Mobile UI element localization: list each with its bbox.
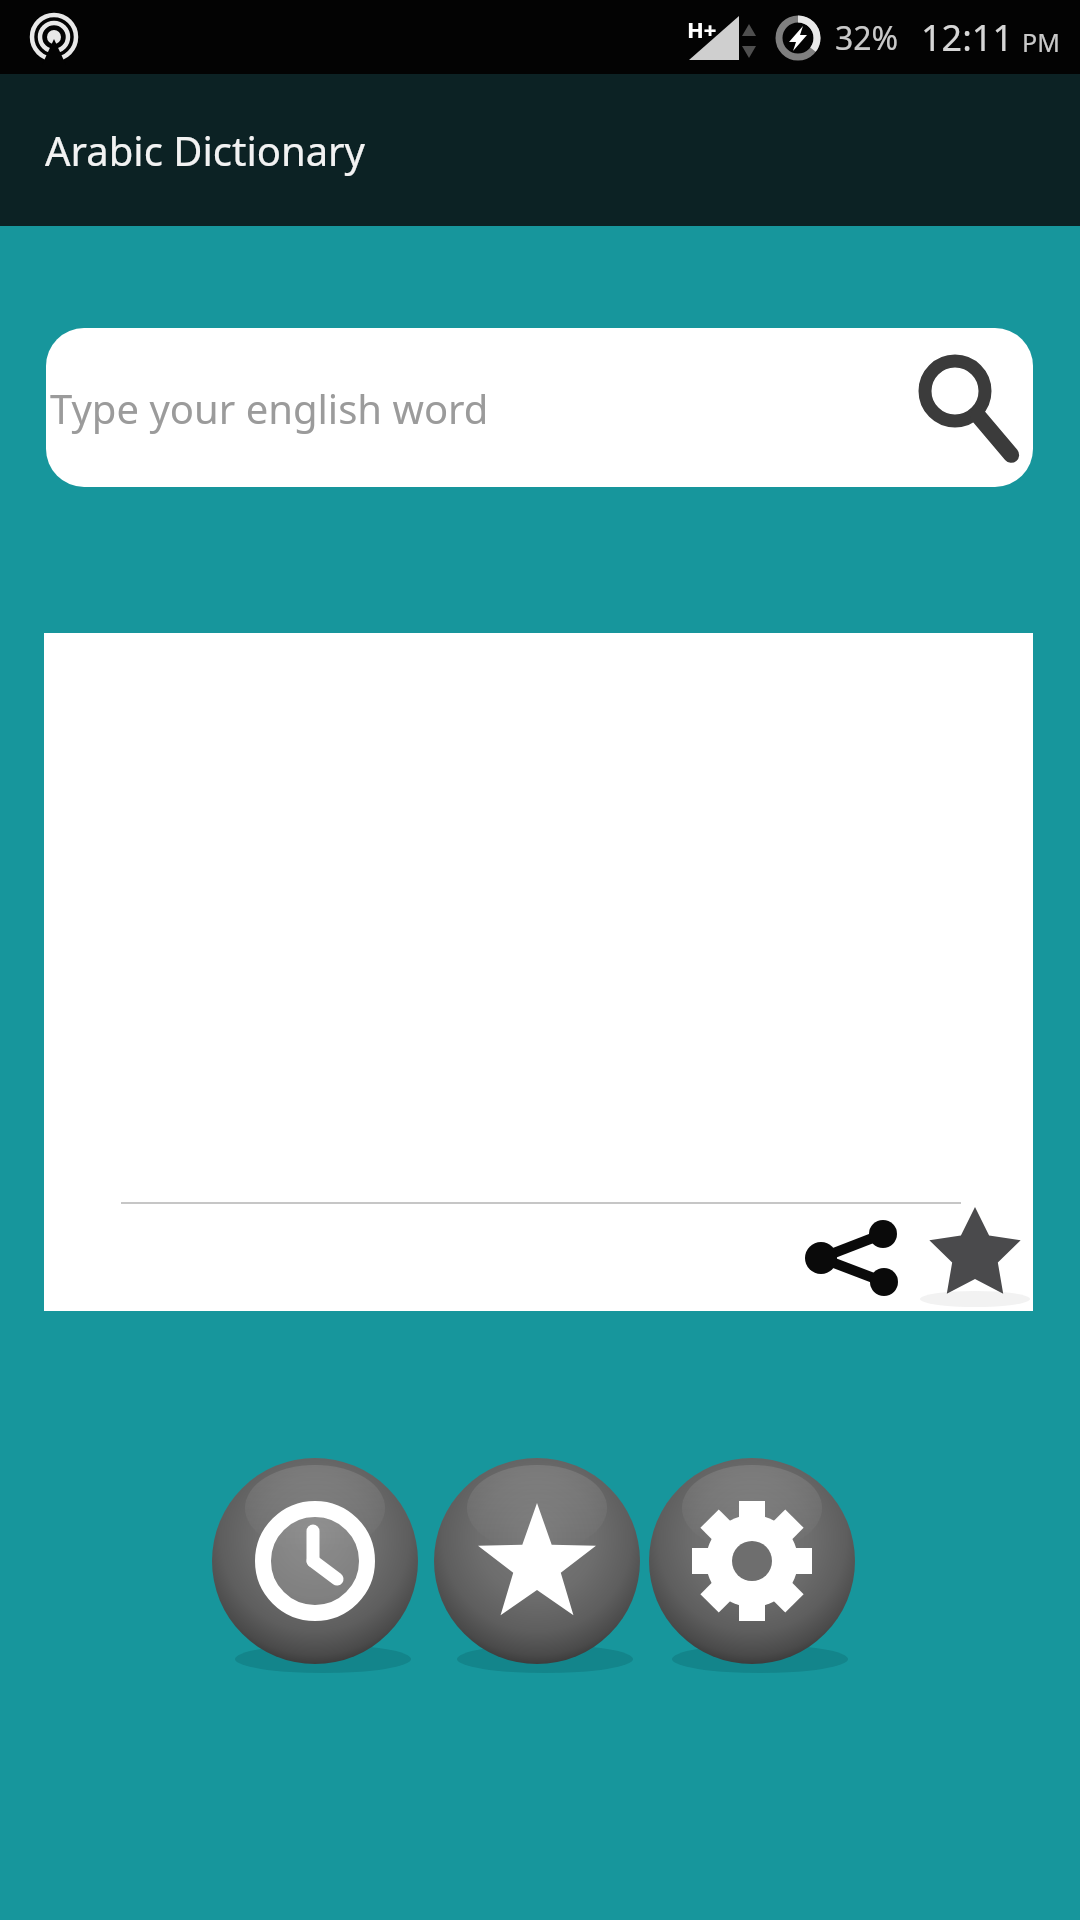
staticText: 32% (835, 16, 899, 60)
button[interactable]: Type your english word (46, 328, 1033, 487)
staticText: Type your english word (50, 381, 489, 435)
button[interactable] (920, 1205, 1030, 1313)
button[interactable] (804, 1208, 944, 1311)
button[interactable] (649, 1458, 855, 1664)
button[interactable] (434, 1458, 640, 1664)
staticText: PM (1022, 25, 1060, 59)
staticText: H+ (687, 14, 717, 44)
button[interactable] (212, 1458, 418, 1664)
staticText: 12:11 (921, 13, 1014, 62)
staticText: Arabic Dictionary (45, 123, 365, 177)
